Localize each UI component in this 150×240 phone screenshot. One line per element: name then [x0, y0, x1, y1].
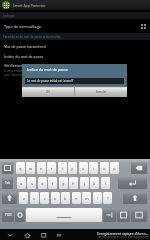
- staticText: OK: [46, 90, 50, 94]
- staticText: Type de verrouillage: [4, 24, 141, 29]
- button[interactable]: i: [89, 162, 98, 174]
- staticText: z: [23, 196, 25, 201]
- button[interactable]: ?: [103, 192, 112, 204]
- staticText: g: [62, 181, 65, 186]
- staticText: c: [44, 196, 46, 201]
- staticText: Smart App Protector: [13, 3, 46, 8]
- staticText: Lock type: [3, 14, 15, 18]
- button[interactable]: a: [17, 177, 26, 189]
- staticText: s: [31, 181, 33, 186]
- staticText: Si vous oubliez le mot de passe pour dév…: [4, 69, 47, 77]
- button[interactable]: z: [19, 192, 28, 204]
- staticText: n: [75, 196, 78, 201]
- staticText: h: [72, 181, 75, 186]
- staticText: Tab: [5, 181, 10, 185]
- button[interactable]: n: [72, 192, 81, 204]
- staticText: i: [93, 166, 95, 171]
- staticText: j: [84, 181, 86, 186]
- button[interactable]: OK: [22, 86, 74, 97]
- staticText: a: [20, 181, 23, 186]
- button[interactable]: Shift: [123, 192, 147, 204]
- staticText: f: [52, 181, 54, 186]
- staticText: ?: [107, 196, 109, 201]
- button[interactable]: Settings: [15, 208, 25, 222]
- button[interactable]: Space: [26, 208, 102, 222]
- button[interactable]: Enter: [118, 177, 147, 189]
- button[interactable]: p: [110, 162, 119, 174]
- button[interactable]: Home: [22, 230, 32, 240]
- button[interactable]: Mot de passe (caractères): [0, 41, 150, 51]
- button[interactable]: Type de verrouillage: [0, 20, 150, 32]
- button[interactable]: x: [30, 192, 39, 204]
- staticText: m: [85, 196, 89, 201]
- button[interactable]: Vérification: [0, 63, 150, 83]
- button[interactable]: f: [48, 177, 57, 189]
- staticText: p: [113, 166, 116, 171]
- staticText: Indice du mot de passe: [27, 67, 68, 72]
- button[interactable]: Backspace: [131, 162, 147, 174]
- staticText: Indice du mot de passe: [4, 54, 44, 59]
- button[interactable]: Recents: [39, 230, 49, 240]
- button[interactable]: Shift: [2, 192, 17, 204]
- staticText: u: [82, 166, 85, 171]
- button[interactable]: r: [47, 162, 56, 174]
- staticText: b: [64, 196, 67, 201]
- staticText: t: [62, 166, 64, 171]
- staticText: Le mot de passe initial est 'airwolf': [27, 79, 74, 83]
- staticText: Vérification: [4, 63, 24, 68]
- button[interactable]: w: [26, 162, 35, 174]
- button[interactable]: Annuler: [75, 86, 127, 97]
- button[interactable]: y: [68, 162, 77, 174]
- button[interactable]: Tab: [2, 177, 13, 189]
- staticText: y: [71, 166, 74, 171]
- staticText: Annuler: [96, 90, 107, 94]
- staticText: Enregistrement capture d'écran...: [97, 231, 149, 235]
- staticText: e: [40, 166, 43, 171]
- button[interactable]: !: [93, 192, 102, 204]
- button[interactable]: Tab: [103, 208, 116, 222]
- button[interactable]: ?123: [2, 208, 14, 222]
- staticText: Paramètres du mot de passe et du modèle: [3, 35, 61, 39]
- staticText: d: [41, 181, 44, 186]
- staticText: Mot de passe (caractères): [4, 44, 46, 49]
- button[interactable]: c: [40, 192, 49, 204]
- button[interactable]: s: [27, 177, 36, 189]
- staticText: Capture d'écran en cours d'enregistremen…: [97, 235, 149, 239]
- staticText: r: [51, 166, 53, 171]
- staticText: o: [103, 166, 106, 171]
- button[interactable]: h: [69, 177, 78, 189]
- button[interactable]: k: [90, 177, 99, 189]
- staticText: v: [54, 196, 57, 201]
- button[interactable]: Back: [5, 230, 15, 240]
- staticText: !: [97, 196, 99, 201]
- button[interactable]: Indice du mot de passe: [0, 51, 150, 61]
- button[interactable]: d: [38, 177, 47, 189]
- button[interactable]: m: [82, 192, 91, 204]
- button[interactable]: Emoji: [2, 162, 13, 174]
- staticText: w: [29, 166, 33, 171]
- button[interactable]: e: [37, 162, 46, 174]
- staticText: k: [93, 181, 96, 186]
- button[interactable]: Voice input: [117, 208, 130, 222]
- button[interactable]: t: [58, 162, 67, 174]
- staticText: ?123: [5, 213, 12, 217]
- button[interactable]: j: [80, 177, 89, 189]
- staticText: x: [33, 196, 36, 201]
- button[interactable]: b: [61, 192, 70, 204]
- button[interactable]: Screenshot: [54, 230, 64, 240]
- button[interactable]: v: [51, 192, 60, 204]
- button[interactable]: q: [16, 162, 25, 174]
- staticText: l: [105, 181, 107, 186]
- button[interactable]: g: [59, 177, 68, 189]
- button[interactable]: u: [79, 162, 88, 174]
- button[interactable]: Smart App Protector: [0, 0, 150, 10]
- button[interactable]: Keyboard options: [131, 208, 147, 222]
- staticText: q: [19, 166, 22, 171]
- button[interactable]: l: [101, 177, 110, 189]
- button[interactable]: o: [100, 162, 109, 174]
